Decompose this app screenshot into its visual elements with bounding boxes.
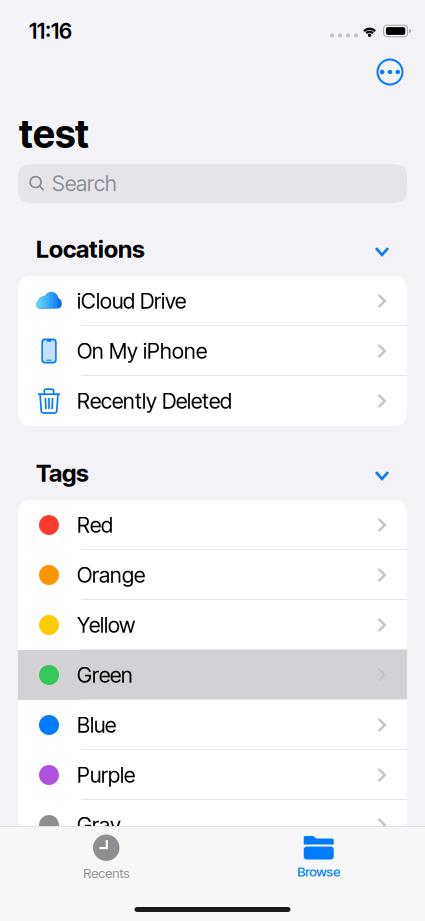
button[interactable]: Blue	[18, 700, 407, 750]
staticText: Red	[77, 512, 113, 538]
staticText: Purple	[77, 762, 135, 788]
button[interactable]: iCloud Drive	[18, 276, 407, 326]
button[interactable]: More	[368, 50, 412, 94]
button[interactable]: Purple	[18, 750, 407, 800]
staticText: Recently Deleted	[77, 388, 232, 414]
staticText: Yellow	[77, 612, 135, 638]
staticText: Gray	[77, 812, 121, 838]
button[interactable]: Green	[18, 650, 407, 700]
button[interactable]: Orange	[18, 550, 407, 600]
staticText: Tags	[36, 458, 89, 487]
button[interactable]: On My iPhone	[18, 326, 407, 376]
button[interactable]: Collapse Tags	[366, 454, 398, 491]
staticText: Search	[52, 171, 117, 196]
staticText: Locations	[36, 234, 145, 263]
staticText: Green	[77, 662, 133, 688]
button[interactable]: Browse	[212, 832, 425, 884]
button[interactable]: Red	[18, 500, 407, 550]
staticText: test	[19, 111, 89, 157]
button[interactable]: Recents	[0, 832, 212, 884]
button[interactable]: Yellow	[18, 600, 407, 650]
staticText: iCloud Drive	[77, 288, 186, 314]
staticText: Blue	[77, 712, 116, 738]
staticText: On My iPhone	[77, 338, 207, 364]
staticText: Browse	[297, 863, 340, 880]
staticText: Orange	[77, 562, 145, 588]
staticText: 11:16	[29, 18, 72, 44]
button[interactable]: Gray	[18, 800, 407, 850]
button[interactable]: Recently Deleted	[18, 376, 407, 426]
button[interactable]: Search	[18, 164, 407, 203]
staticText: Recents	[83, 865, 129, 881]
button[interactable]: Collapse Locations	[366, 230, 398, 267]
